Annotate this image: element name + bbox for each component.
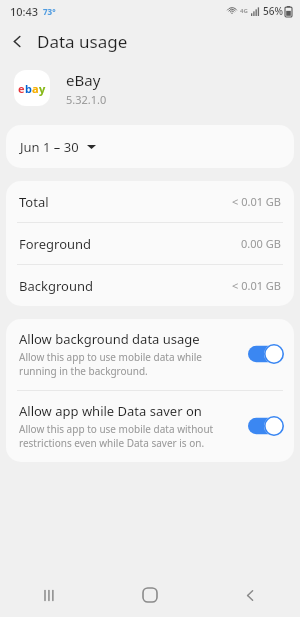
staticText: Allow background data usage	[19, 330, 200, 348]
staticText: < 0.01 GB	[232, 278, 281, 293]
button[interactable]: Toggle	[248, 344, 284, 364]
button[interactable]: Toggle	[248, 416, 284, 436]
staticText: b	[25, 81, 32, 96]
staticText: y	[39, 81, 46, 96]
staticText: 0.00 GB	[241, 236, 281, 251]
button[interactable]: Back	[200, 573, 300, 617]
button[interactable]: Home	[100, 573, 200, 617]
button[interactable]: Total	[6, 181, 294, 222]
staticText: 56%	[263, 4, 283, 18]
button[interactable]: Recents	[0, 573, 100, 617]
staticText: Allow this app to use mobile data while …	[19, 350, 240, 378]
staticText: eBay	[66, 70, 101, 90]
staticText: Data usage	[37, 30, 128, 53]
button[interactable]: Foreground	[6, 223, 294, 264]
staticText: < 0.01 GB	[232, 194, 281, 209]
button[interactable]: Allow app while Data saver on	[6, 391, 294, 462]
staticText: e	[18, 81, 25, 96]
staticText: Jun 1 – 30	[20, 138, 79, 156]
button[interactable]: Background	[6, 265, 294, 306]
staticText: 10:43	[10, 4, 39, 19]
staticText: Background	[19, 277, 93, 295]
staticText: Allow app while Data saver on	[19, 402, 202, 420]
button[interactable]: Back	[0, 24, 34, 58]
staticText: Total	[19, 193, 49, 211]
button[interactable]: Allow background data usage	[6, 319, 294, 390]
staticText: Allow this app to use mobile data withou…	[19, 422, 240, 450]
button[interactable]: Jun 1 – 30	[6, 125, 294, 168]
staticText: 4G	[240, 7, 248, 15]
staticText: a	[32, 81, 39, 96]
staticText: Foreground	[19, 235, 92, 253]
staticText: 73°	[43, 6, 56, 17]
staticText: 5.32.1.0	[66, 92, 107, 107]
